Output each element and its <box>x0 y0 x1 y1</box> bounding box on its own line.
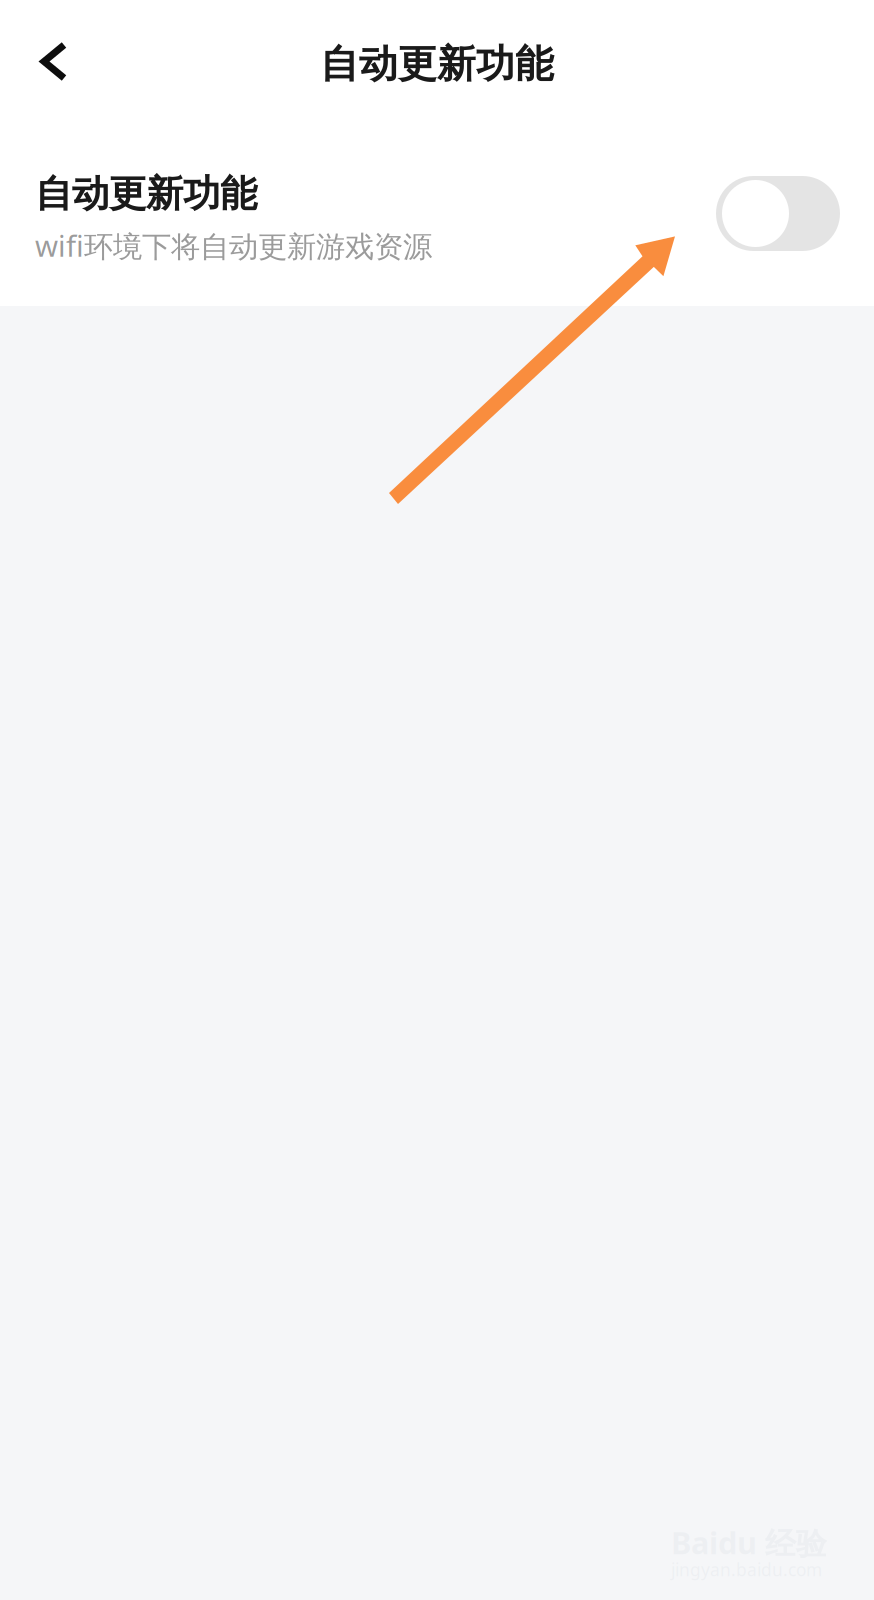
staticText: 自动更新功能 <box>320 40 554 88</box>
staticText: 自动更新功能 <box>35 171 257 217</box>
button[interactable]: 自动更新功能，已关闭 <box>700 122 857 306</box>
staticText: Baidu 经验 <box>671 1522 827 1563</box>
button[interactable]: 返回 <box>0 0 104 122</box>
staticText: wifi环境下将自动更新游戏资源 <box>35 226 432 265</box>
